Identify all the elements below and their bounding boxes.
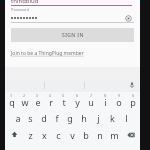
- button[interactable]: Shift: [5, 126, 23, 143]
- button[interactable]: SIGN IN: [11, 28, 134, 42]
- staticText: 8: [104, 93, 107, 98]
- staticText: n: [97, 129, 103, 141]
- button[interactable]: k: [105, 109, 119, 126]
- staticText: Password: [11, 7, 30, 12]
- staticText: i: [104, 96, 107, 108]
- staticText: 9: [118, 93, 121, 98]
- staticText: m: [110, 129, 119, 141]
- button[interactable]: 4: [44, 92, 57, 109]
- button[interactable]: 7: [84, 92, 98, 109]
- button[interactable]: l: [119, 109, 133, 126]
- button[interactable]: m: [107, 126, 121, 143]
- staticText: r: [49, 96, 53, 108]
- button[interactable]: z: [23, 126, 37, 143]
- staticText: l: [125, 112, 128, 124]
- button[interactable]: 8: [98, 92, 112, 109]
- staticText: 2: [23, 93, 26, 98]
- staticText: b: [83, 129, 89, 141]
- button[interactable]: Show password: [5, 13, 140, 23]
- staticText: g: [67, 112, 73, 124]
- staticText: 4: [49, 93, 52, 98]
- staticText: d: [41, 112, 47, 124]
- button[interactable]: 0: [126, 92, 140, 109]
- staticText: k: [110, 112, 115, 124]
- staticText: y: [75, 96, 80, 108]
- staticText: o: [116, 96, 122, 108]
- button[interactable]: Voice input: [124, 78, 140, 92]
- staticText: 6: [76, 93, 79, 98]
- staticText: j: [97, 112, 100, 124]
- button[interactable]: 2: [18, 92, 31, 109]
- staticText: u: [88, 96, 94, 108]
- staticText: e: [35, 96, 41, 108]
- button[interactable]: b: [79, 126, 93, 143]
- staticText: 7: [90, 93, 93, 98]
- staticText: w: [21, 96, 29, 108]
- staticText: p: [130, 96, 136, 108]
- staticText: q: [9, 96, 15, 108]
- button[interactable]: 9: [112, 92, 126, 109]
- button[interactable]: Join to be a ThingPlug member: [11, 50, 84, 57]
- staticText: 1: [10, 93, 13, 98]
- button[interactable]: g: [63, 109, 77, 126]
- button[interactable]: Backspace: [121, 126, 140, 143]
- button[interactable]: x: [37, 126, 51, 143]
- staticText: Join to be a ThingPlug member: [11, 50, 84, 57]
- button[interactable]: j: [91, 109, 105, 126]
- button[interactable]: 3: [31, 92, 44, 109]
- staticText: thingplug: [11, 0, 39, 3]
- button[interactable]: f: [50, 109, 63, 126]
- staticText: t: [62, 96, 66, 108]
- staticText: c: [56, 129, 61, 141]
- button[interactable]: d: [37, 109, 50, 126]
- staticText: z: [28, 129, 33, 141]
- staticText: s: [28, 112, 33, 124]
- staticText: 3: [36, 93, 39, 98]
- button[interactable]: thingplug: [5, 0, 140, 6]
- button[interactable]: Show password: [124, 14, 133, 23]
- staticText: h: [81, 112, 87, 124]
- button[interactable]: 5: [57, 92, 70, 109]
- staticText: v: [70, 129, 75, 141]
- staticText: SIGN IN: [62, 32, 84, 39]
- staticText: 5: [62, 93, 65, 98]
- button[interactable]: 1: [5, 92, 18, 109]
- button[interactable]: s: [24, 109, 37, 126]
- button[interactable]: h: [77, 109, 91, 126]
- button[interactable]: v: [65, 126, 79, 143]
- staticText: x: [42, 129, 47, 141]
- staticText: f: [55, 112, 59, 124]
- button[interactable]: 6: [70, 92, 84, 109]
- button[interactable]: a: [11, 109, 24, 126]
- button[interactable]: n: [93, 126, 107, 143]
- staticText: 0: [132, 93, 135, 98]
- button[interactable]: c: [51, 126, 65, 143]
- staticText: a: [15, 112, 21, 124]
